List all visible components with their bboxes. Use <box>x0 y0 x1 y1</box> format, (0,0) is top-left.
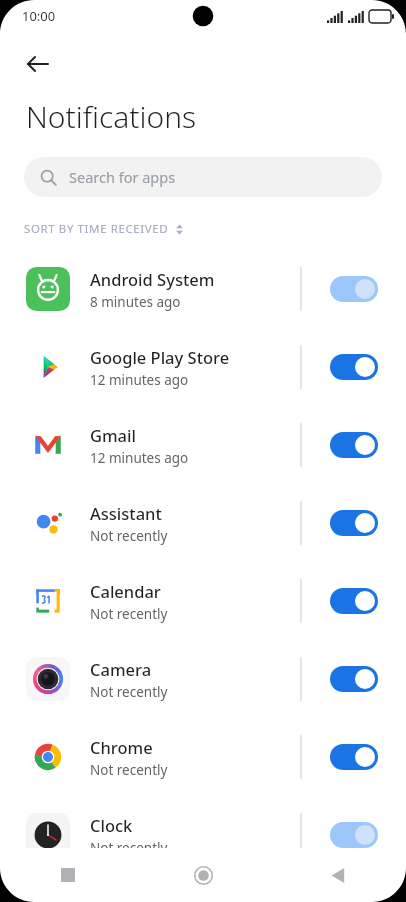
staticText: Camera <box>90 658 152 680</box>
staticText: Not recently <box>90 839 168 857</box>
staticText: 8 minutes ago <box>90 293 181 311</box>
button[interactable]: Toggle Camera <box>302 640 406 718</box>
staticText: Gmail <box>90 424 136 446</box>
button[interactable]: Toggle Calendar <box>302 562 406 640</box>
button[interactable]: Toggle Clock <box>302 796 406 874</box>
button[interactable]: Toggle Assistant <box>302 484 406 562</box>
button[interactable]: Calendar <box>0 562 406 640</box>
staticText: 12 minutes ago <box>90 371 189 389</box>
staticText: Assistant <box>90 502 162 524</box>
button[interactable]: Gmail <box>0 406 406 484</box>
staticText: Clock <box>90 814 133 836</box>
button[interactable]: Google Play Store <box>0 328 406 406</box>
staticText: Not recently <box>90 605 168 623</box>
staticText: Not recently <box>90 527 168 545</box>
button[interactable]: Toggle Google Play Store <box>302 328 406 406</box>
staticText: Not recently <box>90 683 168 701</box>
button[interactable]: Back <box>14 40 62 88</box>
staticText: Google Play Store <box>90 346 230 368</box>
button[interactable]: Assistant <box>0 484 406 562</box>
button[interactable]: Chrome <box>0 718 406 796</box>
button[interactable]: SORT BY TIME RECEIVED <box>24 219 185 239</box>
button[interactable]: Android System <box>0 250 406 328</box>
button[interactable]: Clock <box>0 796 406 874</box>
staticText: Android System <box>90 268 215 290</box>
button[interactable]: Back <box>271 848 406 902</box>
staticText: 12 minutes ago <box>90 449 189 467</box>
staticText: Calendar <box>90 580 161 602</box>
staticText: Chrome <box>90 736 153 758</box>
button[interactable]: Toggle Gmail <box>302 406 406 484</box>
staticText: Notifications <box>26 96 197 137</box>
button[interactable]: Home <box>136 848 271 902</box>
staticText: SORT BY TIME RECEIVED <box>24 221 169 237</box>
button[interactable]: Search for apps <box>24 157 382 197</box>
button[interactable]: Toggle Android System <box>302 250 406 328</box>
button[interactable]: Toggle Chrome <box>302 718 406 796</box>
button[interactable]: Recents <box>0 848 136 902</box>
staticText: 10:00 <box>22 7 56 25</box>
staticText: Search for apps <box>69 167 176 187</box>
button[interactable]: Camera <box>0 640 406 718</box>
staticText: Not recently <box>90 761 168 779</box>
